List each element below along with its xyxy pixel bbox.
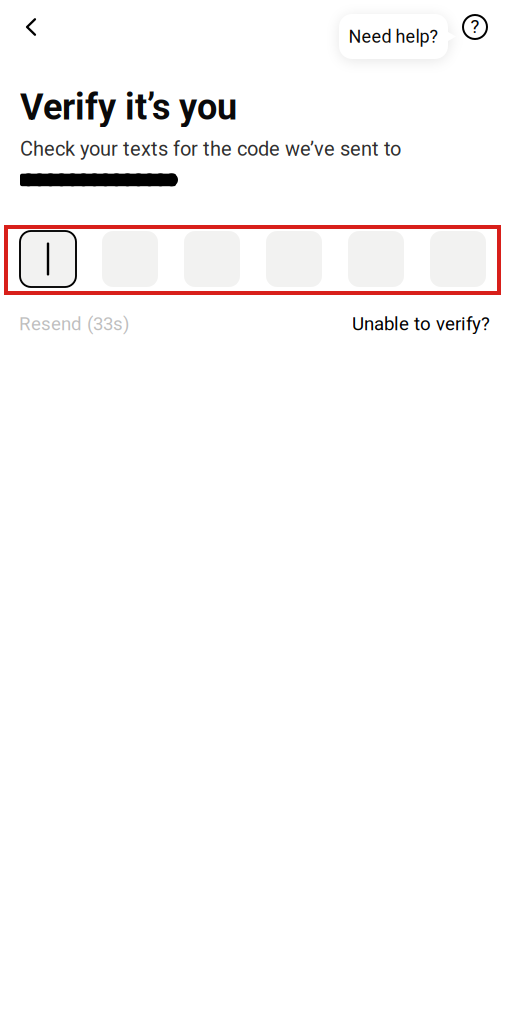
button[interactable]: Resend (33s) bbox=[19, 313, 129, 335]
button[interactable]: Help bbox=[463, 15, 487, 39]
button[interactable]: Code digit 1 bbox=[20, 231, 76, 287]
button[interactable]: Back bbox=[9, 5, 53, 49]
staticText: Check your texts for the code we’ve sent… bbox=[20, 137, 401, 161]
button[interactable]: Need help? bbox=[339, 14, 456, 59]
button[interactable]: Unable to verify? bbox=[352, 313, 490, 335]
staticText: Unable to verify? bbox=[352, 313, 490, 335]
staticText: Need help? bbox=[348, 26, 438, 47]
staticText: Resend (33s) bbox=[19, 313, 129, 335]
staticText: Verify it’s you bbox=[20, 86, 237, 128]
staticText: ? bbox=[470, 16, 479, 37]
